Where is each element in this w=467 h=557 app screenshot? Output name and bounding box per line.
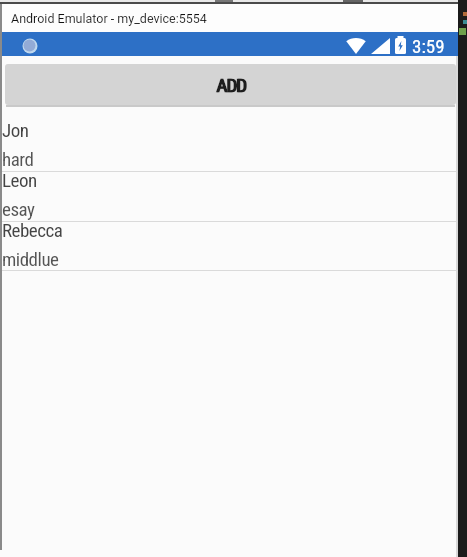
staticText: Leon <box>2 169 37 191</box>
button[interactable]: Rebecca <box>2 221 458 270</box>
staticText: Rebecca <box>2 219 63 241</box>
staticText: Jon <box>2 119 29 141</box>
button[interactable]: ADD <box>5 64 456 105</box>
staticText: 3:59 <box>412 35 445 57</box>
staticText: ADD <box>217 74 247 96</box>
staticText: ADD <box>216 74 246 96</box>
staticText: hard <box>2 148 34 170</box>
button[interactable]: Leon <box>2 171 458 221</box>
staticText: esay <box>2 198 35 220</box>
staticText: Android Emulator - my_device:5554 <box>11 11 207 26</box>
button[interactable]: Jon <box>2 121 458 171</box>
staticText: middlue <box>2 248 59 270</box>
